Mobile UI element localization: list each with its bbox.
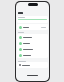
button[interactable] [17,24,48,30]
button[interactable] [17,52,48,58]
button[interactable] [17,40,48,46]
button[interactable] [17,16,48,23]
button[interactable] [17,34,48,40]
button[interactable] [17,46,48,52]
button[interactable] [17,62,48,68]
